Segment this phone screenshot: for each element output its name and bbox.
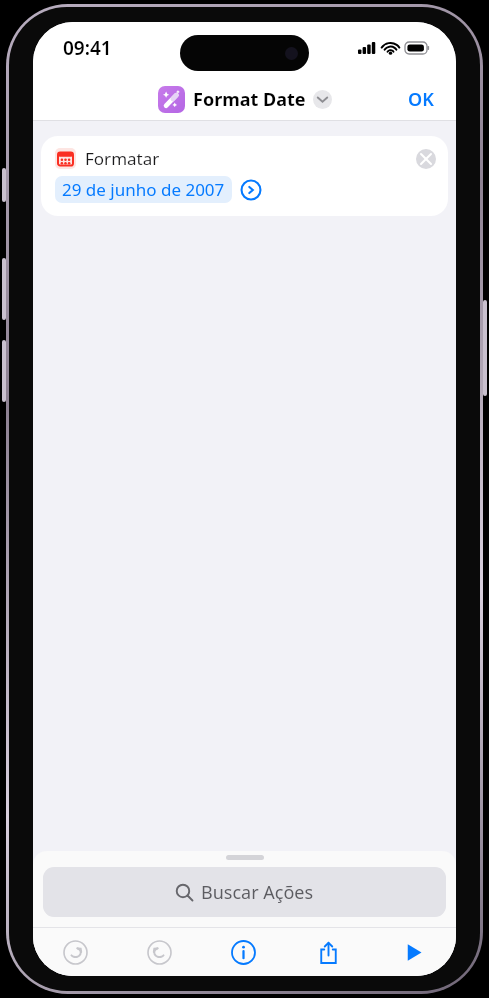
button[interactable]: Formatar [41,136,448,216]
staticText: Buscar Ações [201,880,314,905]
button[interactable]: Buscar Ações [43,867,446,917]
button[interactable]: More options [240,179,262,201]
button[interactable]: OK [386,81,456,118]
button[interactable]: Share [286,928,371,976]
staticText: Formatar [85,147,160,170]
button[interactable]: Remove action [416,149,436,169]
staticText: OK [408,87,434,112]
staticText: 09:41 [63,35,112,61]
button[interactable]: Redo [117,928,201,976]
staticText: Format Date [193,87,306,112]
button[interactable]: 29 de junho de 2007 [55,176,232,203]
button[interactable]: Undo [33,928,117,976]
staticText: 29 de junho de 2007 [62,178,225,201]
button[interactable]: Details [201,928,286,976]
button[interactable]: Show options [313,90,332,109]
button[interactable]: Run [371,928,456,976]
